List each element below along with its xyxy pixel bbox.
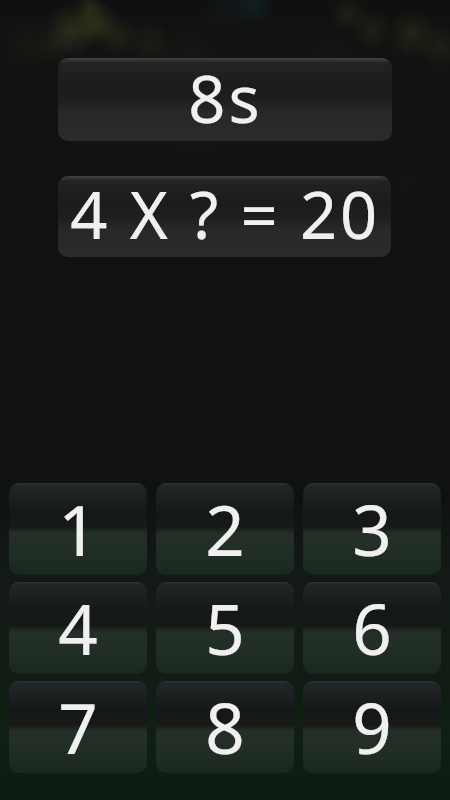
button[interactable]: 8s <box>58 58 392 141</box>
button[interactable]: 4 X ? = 20 <box>58 176 391 257</box>
staticText: 6 <box>352 582 392 673</box>
button[interactable]: 6 <box>303 582 441 674</box>
button[interactable]: 2 <box>156 483 294 575</box>
staticText: 8s <box>188 58 263 137</box>
button[interactable]: 8 <box>156 681 294 773</box>
staticText: 9 <box>352 681 392 772</box>
button[interactable]: 4 <box>9 582 147 674</box>
button[interactable]: 3 <box>303 483 441 575</box>
staticText: 4 X ? = 20 <box>70 176 380 251</box>
staticText: 1 <box>58 483 98 574</box>
button[interactable]: 9 <box>303 681 441 773</box>
staticText: 3 <box>352 483 392 574</box>
button[interactable]: 1 <box>9 483 147 575</box>
staticText: 4 <box>58 582 98 673</box>
button[interactable]: 7 <box>9 681 147 773</box>
button[interactable]: 5 <box>156 582 294 674</box>
staticText: 5 <box>205 582 245 673</box>
staticText: 8 <box>205 681 245 772</box>
staticText: 7 <box>58 681 98 772</box>
staticText: 2 <box>205 483 245 574</box>
